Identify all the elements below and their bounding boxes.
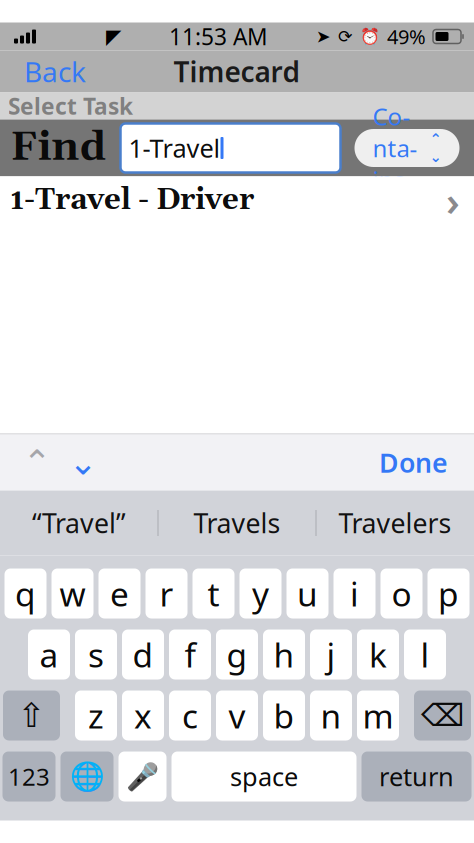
staticText: w — [59, 571, 85, 616]
staticText: f — [184, 632, 195, 677]
button[interactable]: Previous field — [14, 440, 60, 484]
staticText: m — [362, 693, 393, 738]
staticText: Back — [24, 53, 86, 90]
staticText: u — [297, 571, 318, 616]
button[interactable]: space — [171, 751, 356, 801]
staticText: y — [252, 571, 269, 616]
staticText: ⇧ — [17, 697, 45, 734]
button[interactable]: h — [263, 629, 305, 679]
staticText: l — [420, 632, 429, 677]
staticText: c — [182, 693, 198, 738]
staticText: h — [273, 632, 294, 677]
button[interactable]: o — [380, 568, 422, 618]
button[interactable]: c — [169, 690, 211, 740]
staticText: Select Task — [8, 91, 133, 121]
staticText: o — [391, 571, 411, 616]
staticText: 1-Travel - Driver — [10, 182, 254, 219]
staticText: r — [159, 571, 173, 616]
button[interactable]: s — [75, 629, 117, 679]
staticText: 11:53 AM — [169, 21, 268, 51]
button[interactable]: Back — [14, 47, 96, 96]
button[interactable]: i — [333, 568, 375, 618]
staticText: e — [110, 571, 129, 616]
button[interactable]: m — [357, 690, 399, 740]
staticText: Travelers — [338, 505, 451, 541]
staticText: b — [273, 693, 294, 738]
staticText: Done — [379, 445, 448, 480]
staticText: Travels — [193, 505, 280, 541]
button[interactable]: Travelers — [316, 490, 473, 555]
button[interactable]: return — [361, 751, 471, 801]
staticText: Find — [10, 123, 106, 173]
button[interactable]: Delete — [414, 690, 471, 740]
staticText: v — [228, 693, 245, 738]
button[interactable]: Switch keyboard — [60, 751, 113, 801]
staticText: 🎤 — [126, 761, 159, 792]
staticText: ⌃ — [429, 131, 441, 147]
staticText: j — [326, 632, 335, 677]
button[interactable]: y — [239, 568, 281, 618]
button[interactable]: e — [98, 568, 140, 618]
staticText: ◤ — [106, 25, 121, 48]
staticText: x — [134, 693, 152, 738]
button[interactable]: r — [145, 568, 187, 618]
button[interactable]: w — [51, 568, 93, 618]
button[interactable]: Travels — [158, 490, 315, 555]
staticText: ⌃ — [22, 443, 51, 482]
button[interactable]: j — [310, 629, 352, 679]
button[interactable]: n — [310, 690, 352, 740]
staticText: ⟳ — [338, 27, 353, 46]
button[interactable]: Dictation — [118, 751, 166, 801]
staticText: ⌫ — [421, 698, 464, 733]
staticText: a — [39, 632, 58, 677]
staticText: ⌄ — [68, 443, 97, 482]
button[interactable]: g — [216, 629, 258, 679]
staticText: return — [379, 760, 454, 793]
button[interactable]: Done — [367, 437, 460, 488]
button[interactable]: 123 — [2, 751, 55, 801]
button[interactable]: 1-Travel - Driver — [0, 176, 474, 224]
staticText: n — [320, 693, 341, 738]
staticText: ⌄ — [429, 148, 441, 165]
staticText: 1-Travel — [128, 131, 220, 165]
button[interactable]: “Travel” — [0, 490, 157, 555]
button[interactable]: Shift — [3, 690, 60, 740]
button[interactable]: a — [28, 629, 70, 679]
button[interactable]: f — [169, 629, 211, 679]
staticText: › — [446, 174, 460, 227]
staticText: ➤ — [316, 27, 331, 46]
button[interactable]: b — [263, 690, 305, 740]
staticText: t — [207, 571, 219, 616]
button[interactable]: l — [404, 629, 446, 679]
button[interactable]: d — [122, 629, 164, 679]
staticText: d — [132, 632, 153, 677]
button[interactable]: x — [122, 690, 164, 740]
button[interactable]: z — [75, 690, 117, 740]
button[interactable]: k — [357, 629, 399, 679]
staticText: Contains — [372, 100, 417, 196]
staticText: q — [15, 571, 36, 616]
button[interactable]: q — [4, 568, 46, 618]
button[interactable]: p — [427, 568, 469, 618]
staticText: z — [88, 693, 104, 738]
button[interactable]: u — [286, 568, 328, 618]
staticText: s — [88, 632, 104, 677]
staticText: k — [369, 632, 387, 677]
staticText: 49% — [387, 23, 426, 50]
staticText: space — [230, 760, 298, 793]
staticText: g — [226, 632, 247, 677]
staticText: p — [438, 571, 459, 616]
button[interactable]: v — [216, 690, 258, 740]
button[interactable]: Contains — [354, 129, 459, 167]
staticText: i — [350, 571, 359, 616]
staticText: ⏰ — [360, 27, 380, 46]
staticText: 🌐 — [69, 760, 104, 792]
button[interactable]: Next field — [60, 440, 106, 484]
button[interactable]: t — [192, 568, 234, 618]
staticText: 123 — [8, 761, 50, 792]
staticText: Timecard — [173, 53, 300, 90]
staticText: “Travel” — [32, 505, 126, 541]
